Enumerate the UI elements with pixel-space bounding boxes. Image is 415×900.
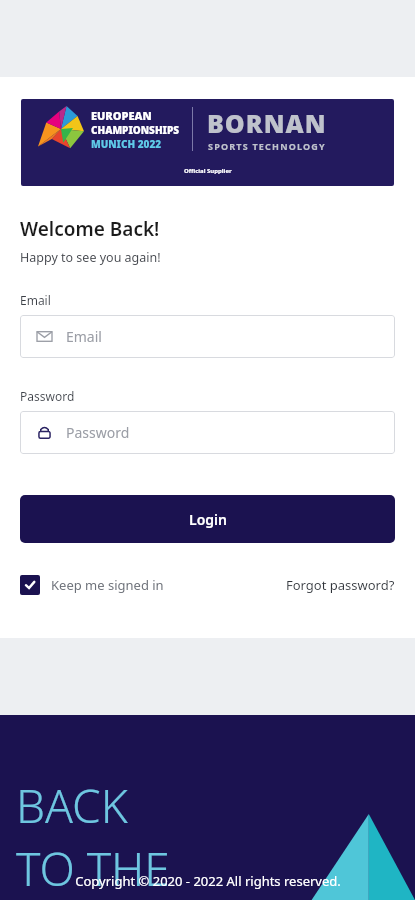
button[interactable]: Login bbox=[20, 495, 395, 543]
staticText: Keep me signed in bbox=[51, 576, 164, 594]
button[interactable]: Keep me signed in bbox=[20, 575, 164, 595]
button[interactable]: Password bbox=[20, 411, 395, 454]
staticText: Copyright © 2020 - 2022 All rights reser… bbox=[75, 872, 341, 890]
staticText: BACK bbox=[16, 774, 128, 837]
staticText: BORNAN bbox=[207, 106, 327, 140]
staticText: Forgot password? bbox=[286, 576, 395, 594]
staticText: Happy to see you again! bbox=[20, 249, 161, 266]
staticText: Official Supplier bbox=[184, 167, 232, 175]
staticText: Password bbox=[66, 423, 130, 442]
staticText: EUROPEAN bbox=[91, 108, 152, 123]
staticText: MUNICH 2022 bbox=[91, 137, 162, 151]
button[interactable]: Email bbox=[20, 315, 395, 358]
staticText: Email bbox=[20, 292, 51, 308]
staticText: Welcome Back! bbox=[20, 216, 160, 242]
staticText: Login bbox=[189, 510, 227, 529]
staticText: SPORTS TECHNOLOGY bbox=[208, 140, 326, 152]
staticText: Password bbox=[20, 388, 75, 404]
staticText: CHAMPIONSHIPS bbox=[91, 123, 180, 137]
button[interactable]: Forgot password? bbox=[286, 576, 395, 594]
staticText: TO THE bbox=[16, 837, 170, 900]
staticText: Email bbox=[66, 327, 102, 346]
